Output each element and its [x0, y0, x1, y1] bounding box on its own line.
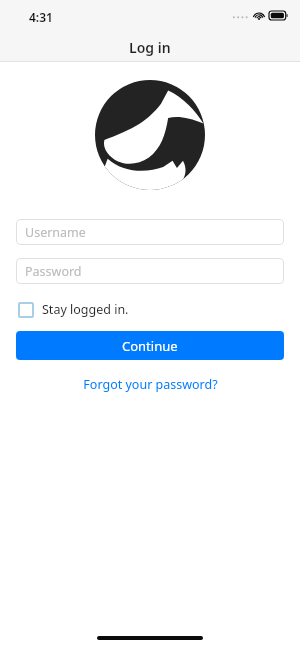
staticText: Stay logged in.: [42, 301, 129, 318]
staticText: Password: [25, 263, 82, 280]
staticText: 4:31: [29, 9, 53, 25]
button[interactable]: Continue: [16, 331, 284, 360]
staticText: Username: [25, 224, 86, 241]
button[interactable]: Password: [16, 258, 284, 284]
staticText: Continue: [122, 337, 178, 355]
button[interactable]: Forgot your password?: [77, 373, 224, 396]
button[interactable]: Username: [16, 219, 284, 245]
button[interactable]: Stay logged in.: [16, 299, 131, 320]
other: App logo: [95, 80, 205, 190]
staticText: Log in: [129, 38, 171, 57]
